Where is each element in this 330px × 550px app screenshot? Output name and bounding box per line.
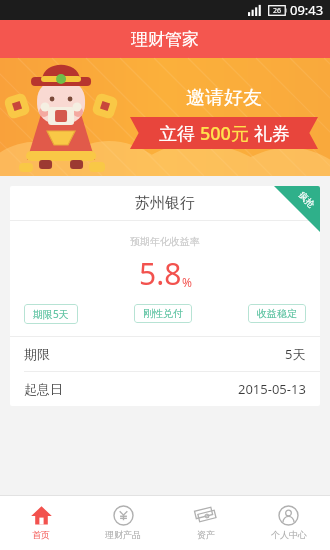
staticText: 苏州银行 [135, 194, 195, 213]
staticText: 个人中心 [271, 529, 307, 540]
staticText: 立得 [159, 121, 200, 146]
button[interactable]: 首页 [0, 496, 82, 550]
staticText: 2015-05-13 [238, 380, 306, 398]
button[interactable]: 收益稳定 [248, 304, 306, 323]
staticText: % [182, 274, 192, 290]
other: 资产 [195, 505, 216, 526]
staticText: 期限 [24, 346, 50, 362]
staticText: 5天 [285, 345, 306, 363]
staticText: 理财产品 [105, 529, 141, 540]
button[interactable]: 资产 [164, 496, 247, 550]
other: 理财产品 [113, 505, 134, 526]
staticText: 5.8 [139, 253, 182, 294]
button[interactable]: 苏州银行 [10, 186, 320, 406]
button[interactable]: 个人中心 [247, 496, 330, 550]
staticText: 预期年化收益率 [10, 235, 320, 248]
staticText: 礼券 [249, 121, 290, 146]
button[interactable]: 期限5天 [24, 304, 78, 324]
staticText: 首页 [32, 529, 50, 540]
staticText: 疯抢 [297, 189, 317, 210]
staticText: 26 [273, 6, 282, 16]
button[interactable]: 理财产品 [82, 496, 164, 550]
staticText: 资产 [197, 529, 215, 540]
staticText: 起息日 [24, 381, 63, 397]
staticText: 期限5天 [33, 307, 69, 321]
staticText: 收益稳定 [257, 307, 297, 320]
staticText: 500元 [200, 121, 249, 146]
other: 个人中心 [278, 505, 299, 526]
other: 首页 [31, 505, 52, 526]
staticText: 09:43 [290, 1, 324, 19]
staticText: 理财管家 [131, 29, 199, 50]
staticText: 刚性兑付 [143, 307, 183, 320]
button[interactable]: 刚性兑付 [134, 304, 192, 323]
staticText: 邀请好友 [186, 86, 262, 110]
button[interactable]: 邀请好友立得500元礼券 [0, 58, 330, 176]
